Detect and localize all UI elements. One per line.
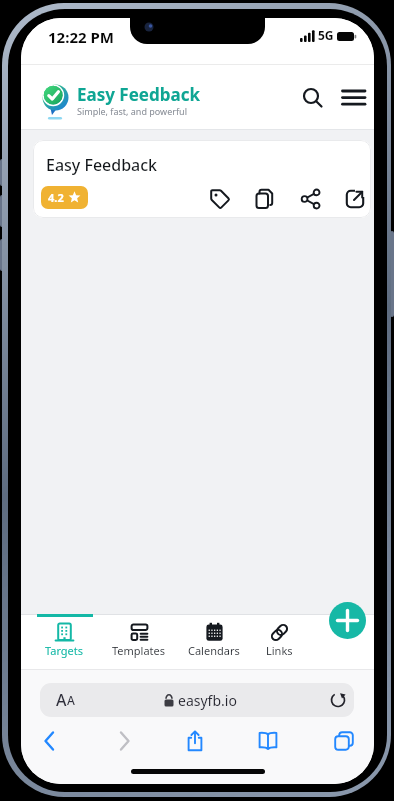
button[interactable] xyxy=(209,188,231,210)
staticText: A xyxy=(56,689,67,711)
staticText: Links xyxy=(266,643,293,658)
button[interactable]: Easy Feedback xyxy=(33,140,371,218)
button[interactable] xyxy=(333,730,355,752)
button[interactable] xyxy=(113,730,135,752)
staticText: easyfb.io xyxy=(178,691,237,710)
staticText: Targets xyxy=(45,643,84,658)
staticText: Templates xyxy=(112,643,166,658)
button[interactable] xyxy=(39,730,61,752)
staticText: Easy Feedback xyxy=(46,154,158,176)
staticText: A xyxy=(67,692,75,708)
button[interactable] xyxy=(300,188,322,210)
staticText: Simple, fast, and powerful xyxy=(77,105,187,117)
button[interactable] xyxy=(344,188,366,210)
button[interactable] xyxy=(254,188,276,210)
staticText: Easy Feedback xyxy=(77,83,200,106)
button[interactable] xyxy=(341,88,367,108)
button[interactable] xyxy=(301,86,325,110)
staticText: 5G xyxy=(318,27,334,43)
staticText: 4.2 xyxy=(48,190,64,205)
button[interactable]: Targets xyxy=(29,618,99,668)
button[interactable]: Links xyxy=(244,618,314,668)
button[interactable]: A xyxy=(40,683,354,717)
button[interactable]: Templates xyxy=(104,618,174,668)
button[interactable]: Calendars xyxy=(179,618,249,668)
button[interactable] xyxy=(257,730,279,752)
staticText: 12:22 PM xyxy=(48,27,114,47)
button[interactable] xyxy=(184,730,206,752)
staticText: Calendars xyxy=(188,643,240,658)
button[interactable] xyxy=(329,602,366,639)
